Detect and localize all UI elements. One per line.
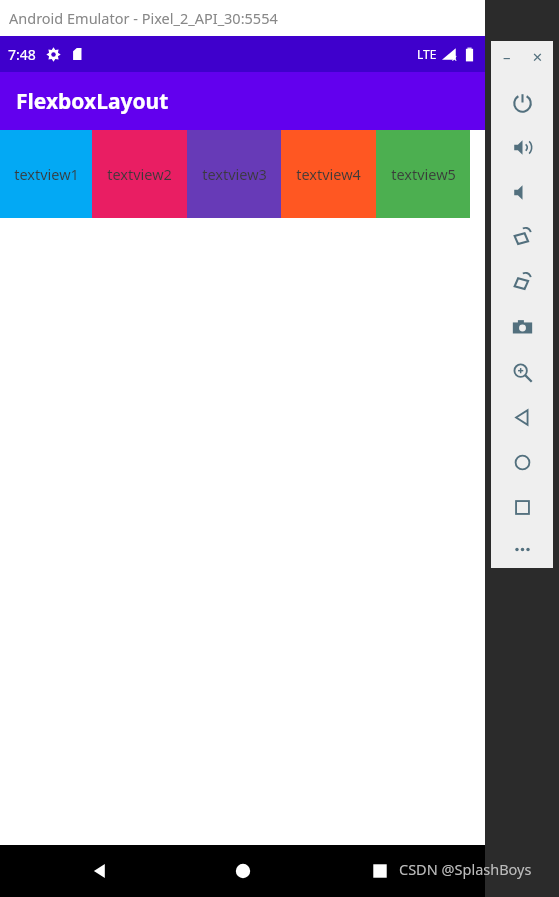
staticText: CSDN @SplashBoys (399, 859, 532, 879)
button[interactable]: Back (80, 851, 120, 891)
button[interactable]: textview1 (0, 130, 92, 218)
button[interactable]: Zoom (491, 350, 553, 395)
button[interactable]: Power (491, 80, 553, 125)
staticText: textview4 (296, 164, 361, 184)
staticText: LTE (417, 46, 437, 62)
staticText: – (503, 47, 511, 67)
staticText: ✕ (532, 50, 543, 65)
staticText: FlexboxLayout (16, 87, 169, 116)
staticText: textview5 (391, 164, 456, 184)
button[interactable]: Take screenshot (491, 305, 553, 350)
button[interactable]: textview4 (281, 130, 376, 218)
button[interactable]: Minimize (491, 41, 522, 73)
button[interactable]: Volume down (491, 170, 553, 215)
button[interactable]: Recent apps (360, 851, 400, 891)
button[interactable]: Volume up (491, 125, 553, 170)
button[interactable]: textview2 (92, 130, 187, 218)
button[interactable]: Rotate left (491, 215, 553, 260)
button[interactable]: Home (223, 851, 263, 891)
staticText: textview3 (202, 164, 267, 184)
button[interactable]: textview3 (187, 130, 281, 218)
button[interactable]: textview5 (376, 130, 470, 218)
button[interactable]: More (491, 530, 553, 568)
button[interactable]: Close (522, 41, 553, 73)
button[interactable]: Rotate right (491, 260, 553, 305)
staticText: textview1 (14, 164, 79, 184)
staticText: textview2 (107, 164, 172, 184)
button[interactable]: Overview (491, 485, 553, 530)
button[interactable]: Home (491, 440, 553, 485)
staticText: Android Emulator - Pixel_2_API_30:5554 (9, 8, 278, 28)
staticText: 7:48 (8, 45, 36, 64)
button[interactable]: Back (491, 395, 553, 440)
